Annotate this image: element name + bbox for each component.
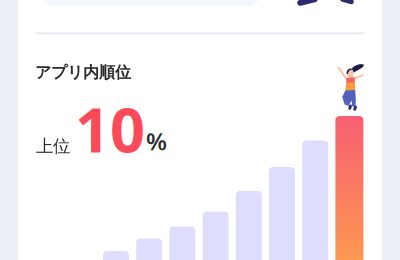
staticText: 10	[75, 88, 145, 169]
button[interactable]: アプリ内順位	[18, 34, 382, 260]
staticText: アプリ内順位	[35, 62, 131, 82]
staticText: %	[146, 125, 167, 157]
staticText: 上位	[36, 135, 70, 157]
